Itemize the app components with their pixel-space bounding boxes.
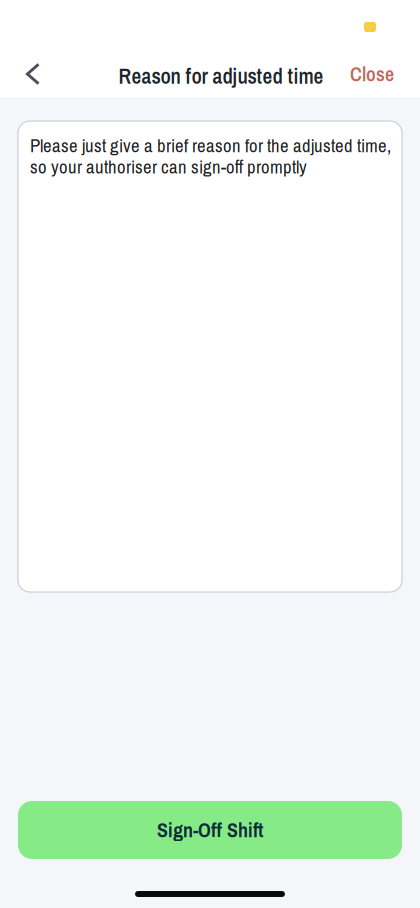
staticText: Close (350, 60, 394, 87)
staticText: Sign-Off Shift (157, 816, 263, 843)
button[interactable]: Close (336, 51, 408, 97)
button[interactable]: Back (11, 51, 55, 97)
button[interactable]: Sign-Off Shift (18, 801, 402, 859)
staticText: Reason for adjusted time (118, 62, 323, 90)
button[interactable]: Please just give a brief reason for the … (18, 121, 402, 592)
staticText: Please just give a brief reason for the … (30, 133, 391, 179)
